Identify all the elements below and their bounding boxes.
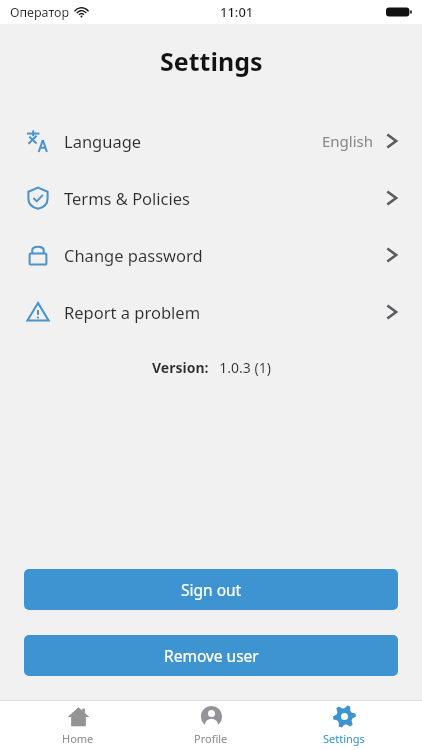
staticText: Terms & Policies (64, 187, 190, 209)
button[interactable]: Report a problem (0, 283, 422, 340)
button[interactable]: Sign out (24, 569, 398, 610)
button[interactable]: Terms & Policies (0, 169, 422, 226)
staticText: Оператор (10, 4, 70, 21)
staticText: 11:01 (220, 3, 254, 21)
button[interactable]: Profile (156, 701, 266, 750)
button[interactable]: Remove user (24, 635, 398, 676)
button[interactable]: Change password (0, 226, 422, 283)
staticText: Change password (64, 244, 203, 266)
staticText: Remove user (164, 645, 259, 666)
button[interactable]: Language (0, 112, 422, 169)
staticText: Version: 1.0.3 (1) (152, 358, 271, 377)
staticText: Report a problem (64, 301, 201, 323)
staticText: Sign out (181, 579, 242, 600)
button[interactable]: Home (23, 701, 133, 750)
staticText: English (322, 131, 374, 151)
staticText: Profile (194, 731, 228, 746)
staticText: Settings (323, 731, 365, 746)
staticText: Home (62, 731, 94, 746)
staticText: Language (64, 130, 142, 152)
button[interactable]: Settings (289, 701, 399, 750)
staticText: Settings (160, 44, 263, 78)
